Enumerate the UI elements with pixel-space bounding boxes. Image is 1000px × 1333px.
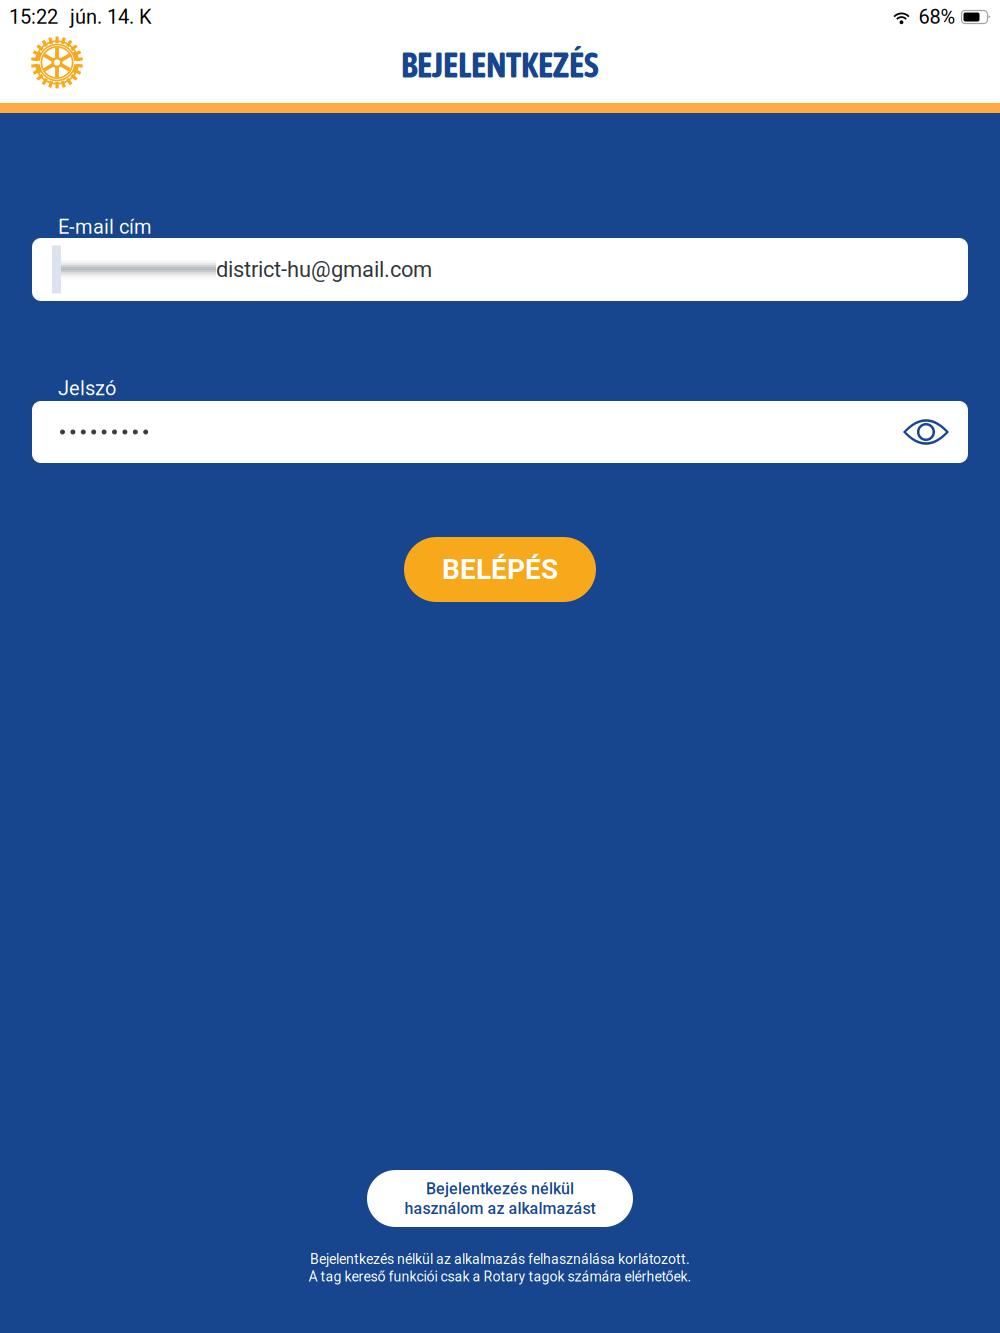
button[interactable]: Jelszó megjelenítése [895, 401, 957, 463]
staticText: 15:22 [9, 5, 58, 29]
staticText: jún. 14. K [70, 5, 152, 29]
staticText: használom az alkalmazást [404, 1199, 595, 1218]
staticText: A tag kereső funkciói csak a Rotary tago… [308, 1268, 691, 1285]
staticText: BEJELENTKEZÉS [401, 45, 599, 85]
button[interactable]: Bejelentkezés nélkül [367, 1170, 633, 1227]
staticText: 68% [918, 5, 955, 29]
staticText: BELÉPÉS [442, 553, 558, 586]
staticText: district-hu@gmail.com [216, 257, 432, 282]
button[interactable]: BELÉPÉS [404, 537, 596, 602]
staticText: Bejelentkezés nélkül [426, 1179, 574, 1198]
staticText: E-mail cím [58, 215, 152, 239]
staticText: Jelszó [58, 377, 116, 400]
staticText: Bejelentkezés nélkül az alkalmazás felha… [310, 1251, 690, 1267]
